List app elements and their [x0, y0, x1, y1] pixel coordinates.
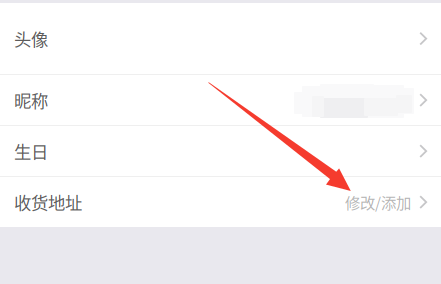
button[interactable]: 收货地址	[0, 177, 441, 227]
button[interactable]: 生日	[0, 126, 441, 176]
button[interactable]: 昵称	[0, 75, 441, 125]
staticText: 头像	[14, 26, 48, 51]
staticText: 收货地址	[14, 189, 82, 215]
staticText: 生日	[14, 138, 48, 164]
staticText: 昵称	[14, 87, 48, 113]
staticText: 修改/添加	[345, 191, 411, 213]
button[interactable]: 头像	[0, 3, 441, 74]
